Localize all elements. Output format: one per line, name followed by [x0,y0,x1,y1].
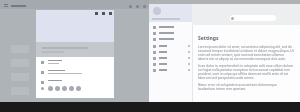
button[interactable]: Open navigation menu [4,4,8,8]
button[interactable] [41,70,114,74]
button[interactable] [149,55,192,61]
button[interactable] [149,67,192,73]
button[interactable] [149,24,192,30]
button[interactable] [149,61,192,67]
button[interactable] [149,30,192,36]
button[interactable] [149,36,192,42]
button[interactable] [41,86,81,91]
button[interactable]: Today [136,5,139,8]
button[interactable]: More options [143,5,146,8]
staticText: Lorem ipsum dolor sit amet, consectetur … [198,45,294,61]
staticText: Settings [198,35,219,42]
button[interactable] [149,43,192,49]
staticText: Irure dolor in reprehenderit in voluptat… [198,64,294,80]
button[interactable]: Search [129,5,132,8]
button[interactable] [41,60,114,64]
button[interactable] [41,80,114,84]
button[interactable] [149,49,192,55]
staticText: Natus error sit voluptatem accusantium d… [198,83,294,91]
button[interactable]: Account [153,7,161,15]
button[interactable] [230,15,276,21]
